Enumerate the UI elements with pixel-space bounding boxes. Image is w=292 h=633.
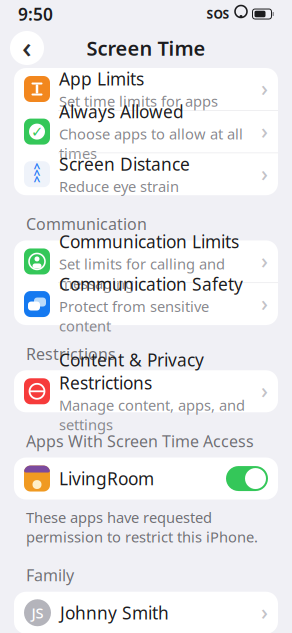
button[interactable]: Communication Limits — [14, 240, 278, 282]
button[interactable]: ✓ — [14, 111, 278, 153]
staticText: › — [261, 376, 268, 404]
staticText: Family — [26, 564, 74, 586]
staticText: Choose apps to allow at all times — [59, 124, 243, 163]
staticText: Content & Privacy Restrictions — [59, 348, 204, 394]
staticText: › — [261, 116, 268, 145]
staticText: Johnny Smith — [60, 601, 169, 624]
staticText: Screen Time — [86, 35, 205, 61]
staticText: Set limits for calling and messaging — [59, 254, 225, 293]
staticText: Screen Distance — [59, 152, 190, 175]
staticText: Restrictions — [26, 343, 116, 364]
button[interactable]: Content & Privacy Restrictions — [14, 370, 278, 412]
staticText: ^ — [33, 173, 40, 189]
staticText: Communication Limits — [59, 230, 239, 253]
staticText: Protect from sensitive content — [59, 297, 209, 336]
staticText: App Limits — [59, 67, 144, 90]
staticText: LivingRoom — [59, 467, 154, 490]
button[interactable]: JS — [14, 592, 278, 633]
staticText: › — [261, 289, 268, 317]
staticText: ‹ — [22, 27, 32, 66]
staticText: Always Allowed — [59, 100, 184, 123]
staticText: Set time limits for apps — [59, 91, 218, 111]
staticText: ^ — [33, 166, 40, 182]
staticText: › — [261, 74, 268, 102]
staticText: › — [261, 159, 268, 187]
staticText: SOS — [206, 6, 229, 22]
button[interactable]: LivingRoom access — [226, 466, 268, 491]
button[interactable]: ^ — [14, 153, 278, 195]
staticText: ^ — [33, 160, 40, 176]
button[interactable]: Communication Safety — [14, 283, 278, 325]
staticText: 9:50 — [18, 2, 53, 25]
staticText: JS — [31, 603, 43, 622]
staticText: › — [261, 598, 268, 626]
button[interactable]: App Limits — [14, 68, 278, 110]
staticText: Communication Safety — [59, 273, 243, 296]
staticText: › — [261, 246, 268, 275]
staticText: These apps have requested permission to … — [26, 507, 258, 546]
staticText: Apps With Screen Time Access — [26, 430, 254, 451]
staticText: Manage content, apps, and settings — [59, 395, 245, 434]
staticText: Communication — [26, 213, 147, 234]
staticText: ✓ — [31, 123, 43, 140]
button[interactable]: Back — [10, 27, 44, 69]
staticText: Reduce eye strain — [59, 176, 179, 196]
